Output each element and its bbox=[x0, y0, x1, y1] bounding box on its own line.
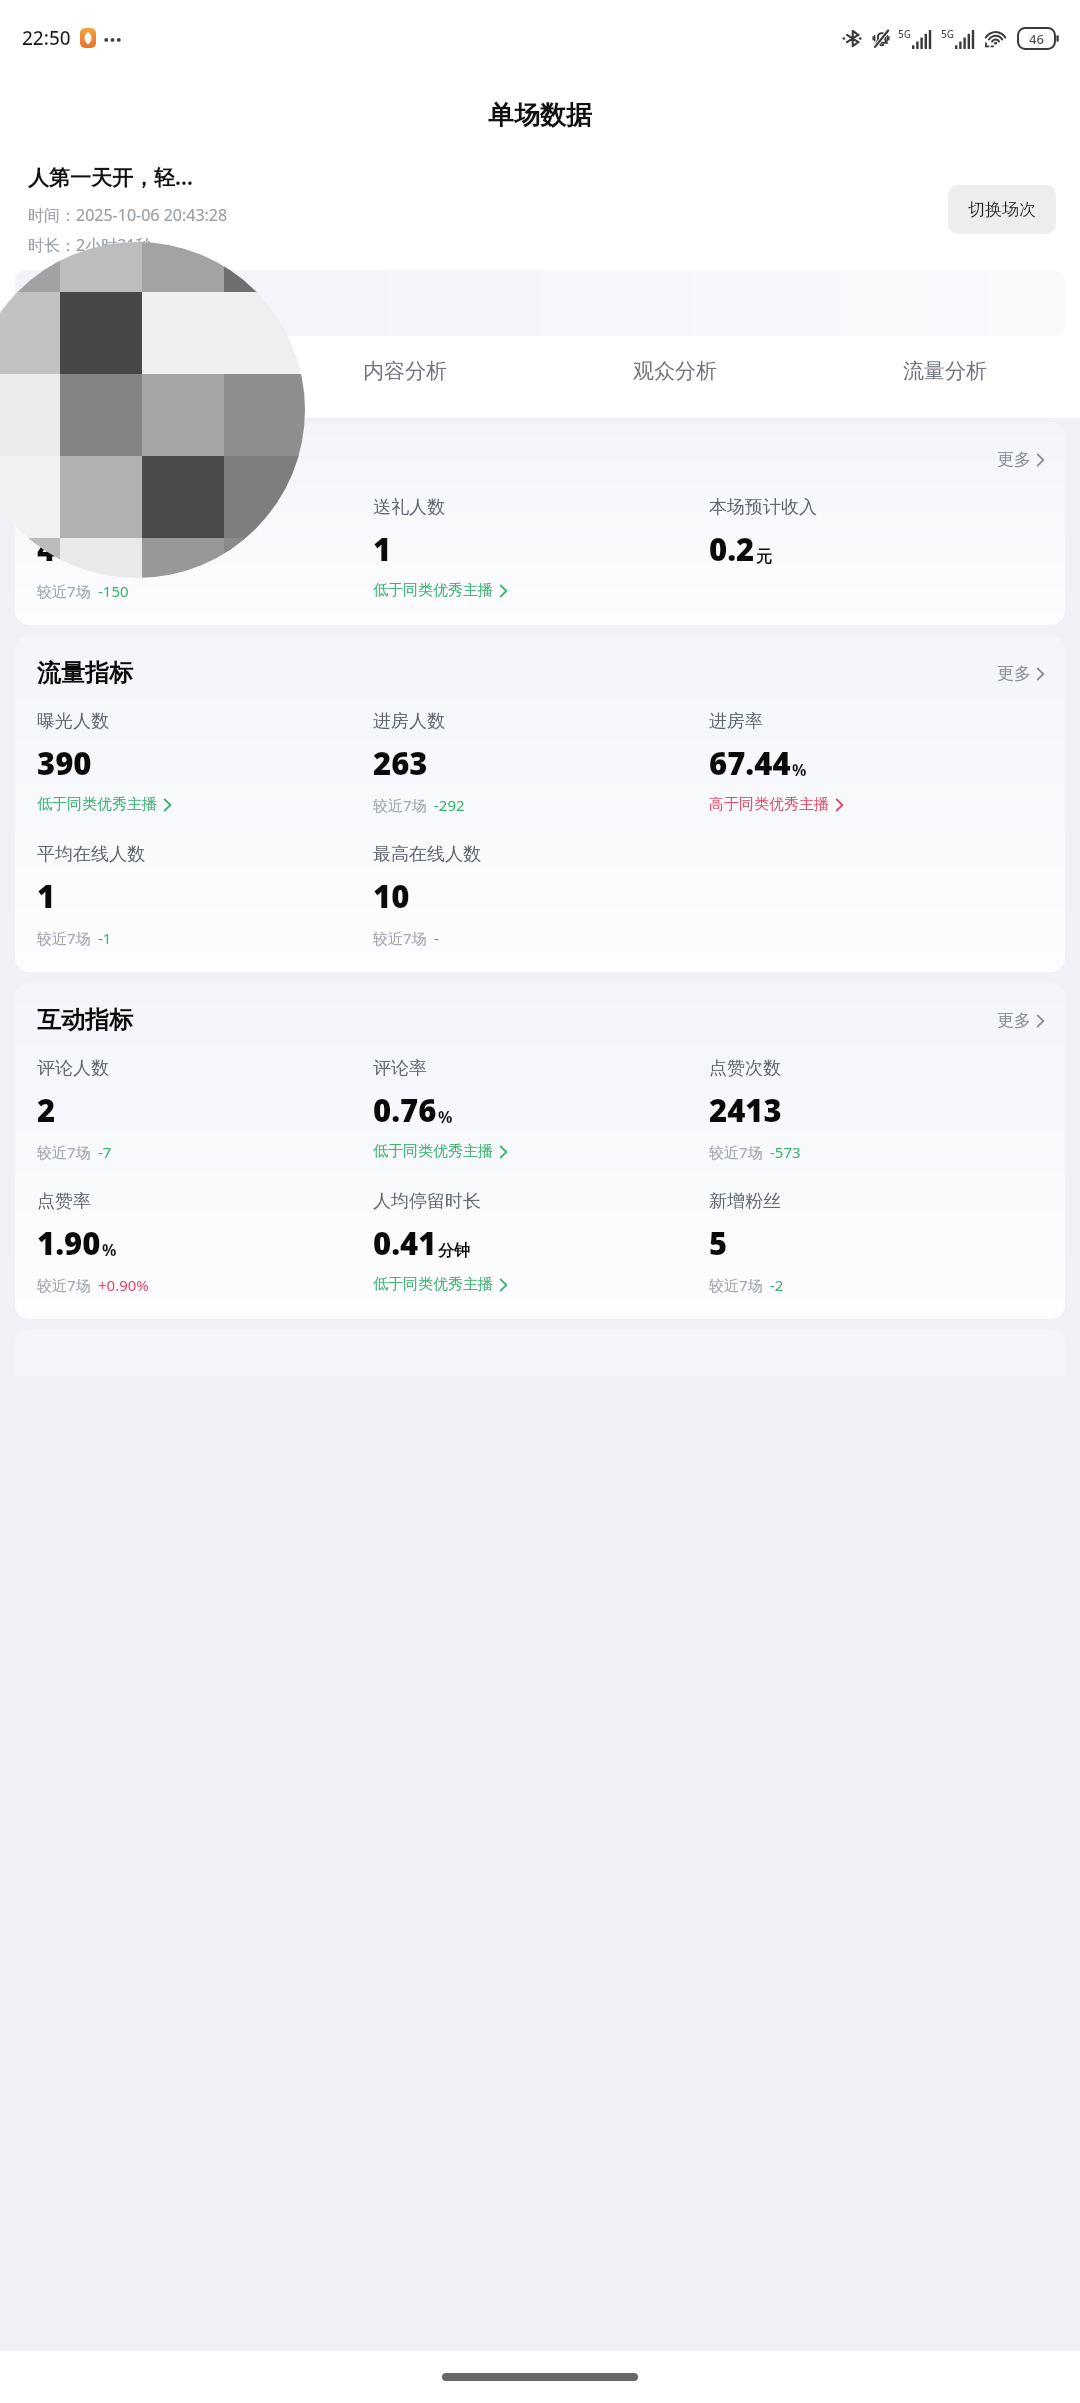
staticText: 更多 bbox=[997, 663, 1031, 684]
button[interactable]: 数据表现 bbox=[0, 336, 270, 418]
button[interactable]: 互动指标 bbox=[15, 983, 1065, 1319]
staticText: 较近7场 bbox=[373, 795, 427, 815]
staticText: 较近7场 bbox=[37, 1142, 91, 1162]
staticText: 低于同类优秀主播 bbox=[373, 1275, 493, 1294]
staticText: 评论人数 bbox=[37, 1057, 109, 1080]
staticText: 0.76 bbox=[373, 1089, 437, 1131]
staticText: 1.90 bbox=[37, 1222, 101, 1264]
staticText: 流量分析 bbox=[903, 358, 987, 384]
staticText: 46 bbox=[1029, 30, 1044, 48]
staticText: 营收指标 bbox=[37, 444, 133, 474]
staticText: 进房人数 bbox=[373, 710, 445, 733]
staticText: 67.44 bbox=[709, 742, 791, 784]
staticText: 时间：2025-10-06 20:43:28 bbox=[28, 204, 228, 226]
staticText: 低于同类优秀主播 bbox=[37, 795, 157, 814]
staticText: -150 bbox=[98, 581, 129, 601]
staticText: -1 bbox=[98, 928, 112, 948]
staticText: 低于同类优秀主播 bbox=[373, 1142, 493, 1161]
staticText: 较近7场 bbox=[709, 1142, 763, 1162]
staticText: 10 bbox=[373, 875, 410, 917]
button[interactable]: 更多 bbox=[997, 449, 1045, 470]
button[interactable]: 切换场次 bbox=[948, 185, 1056, 234]
staticText: 5G bbox=[941, 27, 954, 41]
staticText: 较近7场 bbox=[709, 1275, 763, 1295]
staticText: 收获音浪 bbox=[37, 496, 109, 519]
staticText: 人第一天开，轻… bbox=[28, 163, 193, 192]
staticText: 评论率 bbox=[373, 1057, 427, 1080]
button[interactable]: 内容分析 bbox=[270, 336, 540, 418]
staticText: 22:50 bbox=[22, 25, 71, 51]
staticText: 内容分析 bbox=[363, 358, 447, 384]
staticText: % bbox=[102, 1239, 117, 1261]
button[interactable]: 流量分析 bbox=[810, 336, 1080, 418]
button[interactable]: 更多 bbox=[997, 1010, 1045, 1031]
staticText: 较近7场 bbox=[373, 928, 427, 948]
staticText: 曝光人数 bbox=[37, 710, 109, 733]
staticText: 进房率 bbox=[709, 710, 763, 733]
staticText: 更多 bbox=[997, 449, 1031, 470]
button[interactable]: 高于同类优秀主播 bbox=[709, 795, 844, 814]
staticText: 点赞率 bbox=[37, 1190, 91, 1213]
staticText: -2 bbox=[770, 1275, 784, 1295]
staticText: 分钟 bbox=[438, 1241, 470, 1261]
staticText: - bbox=[434, 928, 439, 948]
staticText: 较近7场 bbox=[37, 1275, 91, 1295]
staticText: 互动指标 bbox=[37, 1005, 133, 1035]
button[interactable]: 低于同类优秀主播 bbox=[373, 1275, 508, 1294]
button[interactable]: 低于同类优秀主播 bbox=[373, 1142, 508, 1161]
staticText: 切换场次 bbox=[968, 199, 1036, 220]
button[interactable]: 83% bbox=[15, 270, 1065, 336]
button[interactable]: 流量指标 bbox=[15, 636, 1065, 972]
staticText: 0.2 bbox=[709, 528, 755, 570]
button[interactable]: 更多 bbox=[997, 663, 1045, 684]
staticText: 时长：2小时21秒 bbox=[28, 234, 152, 256]
staticText: 2413 bbox=[709, 1089, 782, 1131]
staticText: -292 bbox=[434, 795, 465, 815]
staticText: 较近7场 bbox=[37, 581, 91, 601]
staticText: -7 bbox=[98, 1142, 112, 1162]
staticText: 送礼人数 bbox=[373, 496, 445, 519]
staticText: 5G bbox=[898, 27, 911, 41]
staticText: 最高在线人数 bbox=[373, 843, 481, 866]
staticText: 点赞次数 bbox=[709, 1057, 781, 1080]
staticText: 1 bbox=[37, 875, 56, 917]
staticText: 5 bbox=[709, 1222, 728, 1264]
staticText: 0.41 bbox=[373, 1222, 437, 1264]
staticText: % bbox=[438, 1106, 453, 1128]
button[interactable]: 低于同类优秀主播 bbox=[373, 581, 508, 600]
staticText: 1 bbox=[373, 528, 392, 570]
staticText: 390 bbox=[37, 742, 92, 784]
other: Profile avatar (redacted) bbox=[0, 0, 1080, 2403]
staticText: % bbox=[792, 759, 807, 781]
staticText: 单场数据 bbox=[488, 99, 592, 132]
staticText: 低于同类优秀主播 bbox=[373, 581, 493, 600]
staticText: 2 bbox=[37, 1089, 56, 1131]
button[interactable]: 低于同类优秀主播 bbox=[37, 795, 172, 814]
staticText: 较近7场 bbox=[37, 928, 91, 948]
staticText: 4 bbox=[37, 528, 56, 570]
staticText: 83% bbox=[29, 290, 68, 316]
staticText: 平均在线人数 bbox=[37, 843, 145, 866]
staticText: 人均停留时长 bbox=[373, 1190, 481, 1213]
staticText: 观众分析 bbox=[633, 358, 717, 384]
staticText: +0.90% bbox=[98, 1275, 149, 1295]
staticText: 元 bbox=[756, 547, 772, 567]
staticText: 本场预计收入 bbox=[709, 496, 817, 519]
staticText: 数据表现 bbox=[93, 358, 177, 384]
staticText: 高于同类优秀主播 bbox=[709, 795, 829, 814]
button[interactable]: 营收指标 bbox=[15, 422, 1065, 625]
staticText: 263 bbox=[373, 742, 428, 784]
staticText: 同级别主播 bbox=[72, 292, 162, 315]
staticText: -573 bbox=[770, 1142, 801, 1162]
staticText: 更多 bbox=[997, 1010, 1031, 1031]
staticText: 新增粉丝 bbox=[709, 1190, 781, 1213]
button[interactable]: 观众分析 bbox=[540, 336, 810, 418]
staticText: 流量指标 bbox=[37, 658, 133, 688]
